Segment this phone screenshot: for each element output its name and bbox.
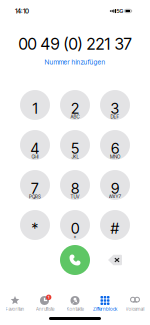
button[interactable]: Kontakte xyxy=(60,295,90,315)
button[interactable]: Löschen xyxy=(100,245,130,275)
button[interactable]: 3 xyxy=(96,86,134,124)
staticText: WXYZ xyxy=(108,194,121,199)
staticText: 8 xyxy=(71,179,79,197)
staticText: PQRS xyxy=(29,194,41,199)
staticText: Voicemail xyxy=(125,306,144,312)
button[interactable]: * xyxy=(16,206,54,244)
button[interactable]: 8 xyxy=(56,166,94,204)
button[interactable]: Favoriten xyxy=(0,295,30,315)
button[interactable]: 0 xyxy=(56,206,94,244)
button[interactable]: 5 xyxy=(56,126,94,164)
staticText: JKL xyxy=(71,154,78,159)
button[interactable]: 6 xyxy=(96,126,134,164)
staticText: + xyxy=(73,234,76,239)
button[interactable]: 4 xyxy=(16,126,54,164)
staticText: 2 xyxy=(71,99,79,117)
staticText: MNO xyxy=(110,154,120,159)
staticText: 6 xyxy=(111,139,119,157)
button[interactable]: 1 xyxy=(16,86,54,124)
staticText: 0 xyxy=(71,219,79,237)
staticText: Nummer hinzufügen xyxy=(44,58,105,66)
button[interactable]: 9 xyxy=(96,166,134,204)
button[interactable]: 1 xyxy=(30,295,60,315)
staticText: * xyxy=(31,219,38,237)
staticText: 7 xyxy=(31,179,39,197)
button[interactable]: Ziffernblock xyxy=(90,295,120,315)
staticText: 3 xyxy=(110,99,119,117)
staticText: 9 xyxy=(111,179,119,197)
staticText: Kontakte xyxy=(66,306,83,312)
button[interactable]: Anrufen xyxy=(56,241,94,279)
staticText: GHI xyxy=(31,154,38,159)
staticText: Favoriten xyxy=(5,306,24,312)
button[interactable]: Nummer hinzufügen xyxy=(39,57,111,67)
staticText: 00 49 (0) 221 37 xyxy=(18,34,131,54)
staticText: 1 xyxy=(32,99,37,117)
staticText: DEF xyxy=(110,114,119,119)
staticText: # xyxy=(110,219,119,237)
staticText: 14:10 xyxy=(15,7,29,15)
staticText: 5 xyxy=(71,139,79,157)
staticText: 4 xyxy=(30,139,39,157)
button[interactable]: 7 xyxy=(16,166,54,204)
staticText: 5G xyxy=(116,8,123,14)
button[interactable]: Voicemail xyxy=(120,295,150,315)
staticText: TUV xyxy=(70,194,79,199)
button[interactable]: 2 xyxy=(56,86,94,124)
staticText: 1 xyxy=(48,295,50,300)
button[interactable]: # xyxy=(96,206,134,244)
staticText: Ziffernblock xyxy=(93,306,117,312)
staticText: ABC xyxy=(70,114,79,119)
staticText: Anrufliste xyxy=(36,306,54,312)
